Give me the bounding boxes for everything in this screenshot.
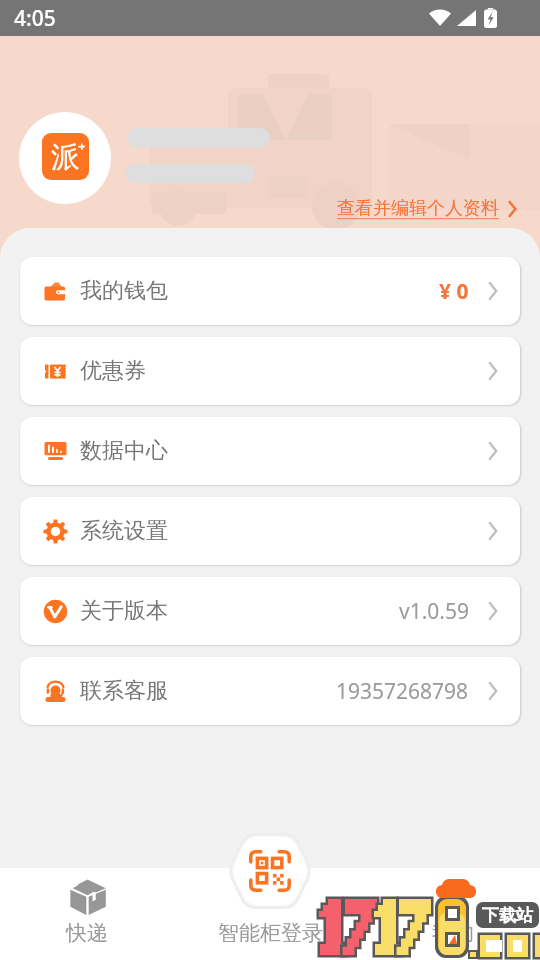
staticText: 系统设置: [80, 517, 168, 545]
staticText: 4:05: [14, 4, 56, 33]
staticText: 我的: [432, 920, 474, 946]
staticText: 快递: [66, 920, 108, 946]
staticText: 19357268798: [336, 677, 469, 706]
button[interactable]: 我的钱包: [20, 257, 520, 325]
button[interactable]: 智能柜登录: [227, 833, 313, 909]
staticText: 查看并编辑个人资料: [337, 197, 499, 220]
button[interactable]: 联系客服: [20, 657, 520, 725]
button[interactable]: 关于版本: [20, 577, 520, 645]
button[interactable]: 头像: [19, 112, 111, 204]
staticText: 关于版本: [80, 597, 168, 625]
staticText: 数据中心: [80, 437, 168, 465]
staticText: 派: [51, 139, 80, 176]
staticText: 优惠券: [80, 357, 146, 385]
button[interactable]: 系统设置: [20, 497, 520, 565]
button[interactable]: 我的: [408, 872, 498, 960]
staticText: 下载站: [482, 905, 533, 926]
button[interactable]: 查看并编辑个人资料: [335, 194, 519, 223]
staticText: 智能柜登录: [218, 920, 323, 946]
button[interactable]: 快递: [42, 872, 132, 960]
staticText: 我的钱包: [80, 277, 168, 305]
staticText: ¥ 0: [439, 277, 469, 306]
staticText: 联系客服: [80, 677, 168, 705]
staticText: +: [78, 137, 86, 155]
button[interactable]: 优惠券: [20, 337, 520, 405]
button[interactable]: 数据中心: [20, 417, 520, 485]
staticText: v1.0.59: [399, 597, 469, 626]
